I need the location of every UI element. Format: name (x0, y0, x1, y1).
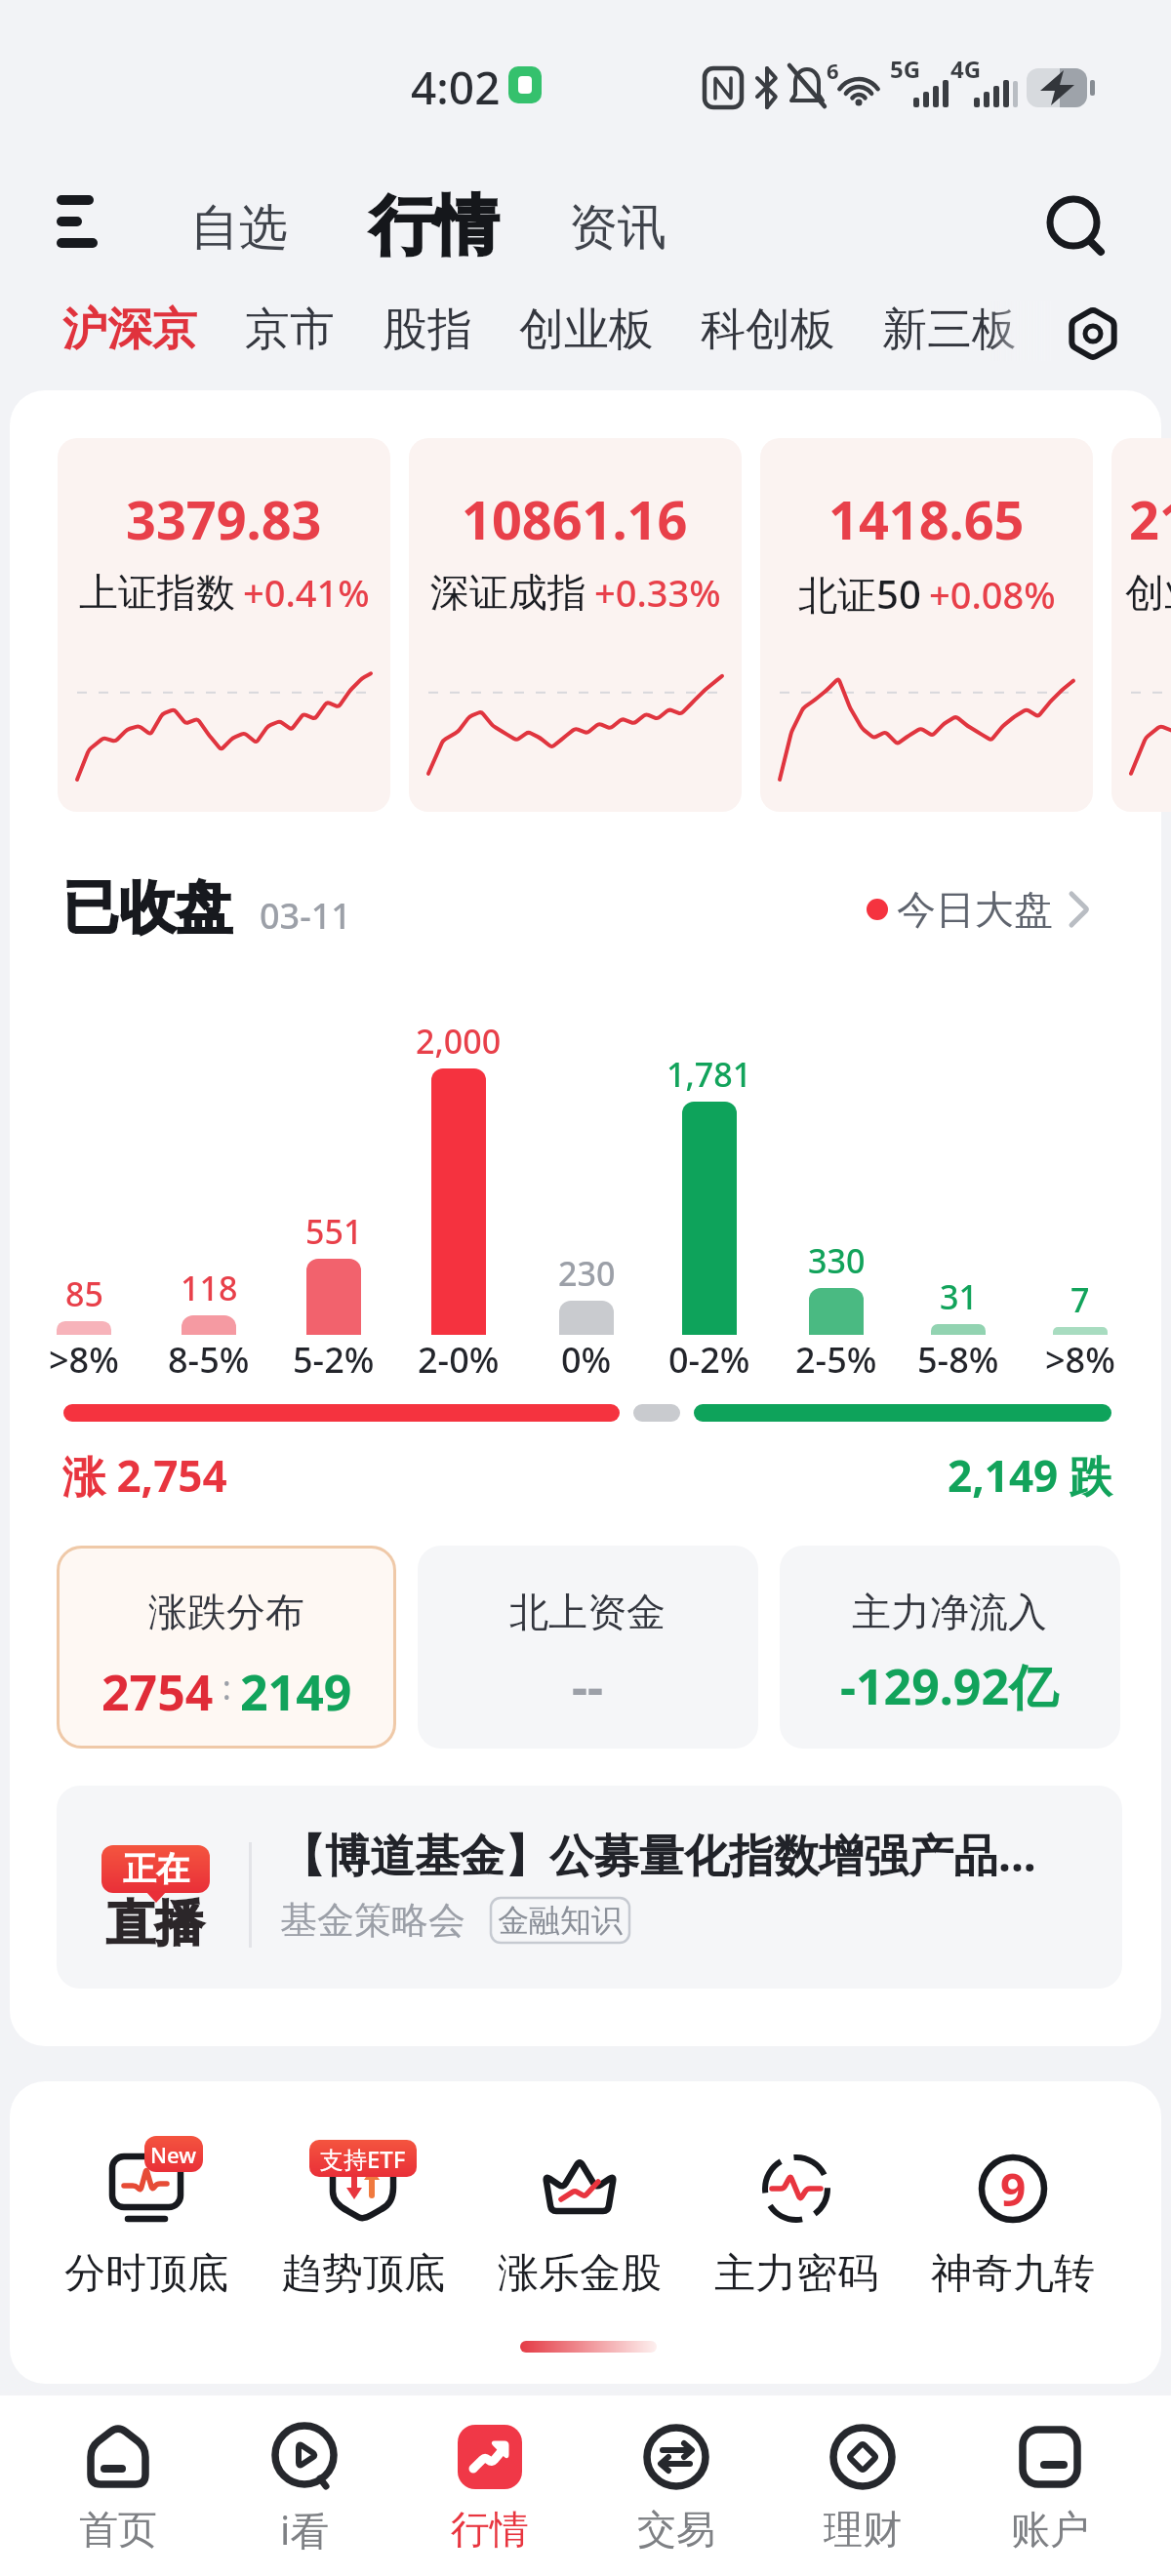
staticText: 创业板 (519, 302, 654, 358)
button[interactable]: 自选 (176, 190, 303, 264)
staticText: 2-0% (418, 1336, 500, 1384)
staticText: -129.92亿 (840, 1653, 1059, 1719)
staticText: 3379.83 (126, 483, 322, 555)
button[interactable] (972, 2400, 1128, 2571)
button[interactable] (57, 1786, 1122, 1989)
staticText: 230 (558, 1251, 616, 1296)
button[interactable] (226, 2400, 383, 2571)
button[interactable] (275, 2115, 451, 2311)
staticText: 1418.65 (828, 483, 1025, 555)
button[interactable] (492, 2115, 667, 2311)
staticText: 5-2% (293, 1336, 375, 1384)
staticText: 主力净流入 (852, 1588, 1047, 1636)
staticText: 科创板 (701, 302, 835, 358)
staticText: 趋势顶底 (281, 2248, 445, 2300)
staticText: 1,781 (666, 1052, 752, 1097)
staticText: 涨乐金股 (498, 2248, 662, 2300)
staticText: 神奇九转 (931, 2248, 1095, 2300)
staticText: 交易 (637, 2505, 715, 2554)
staticText: 03-11 (260, 892, 351, 940)
button[interactable] (40, 2400, 196, 2571)
button[interactable]: 资讯 (554, 190, 681, 264)
staticText: 85 (65, 1271, 103, 1316)
staticText: +0.33% (594, 567, 721, 618)
button[interactable]: 新三板 (867, 285, 1032, 375)
staticText: 深证成指 (430, 568, 586, 617)
staticText: +0.41% (243, 567, 370, 618)
button[interactable] (418, 1546, 758, 1749)
staticText: 330 (808, 1238, 866, 1283)
button[interactable]: 京市 (226, 285, 353, 375)
staticText: 北证50 (798, 567, 921, 621)
staticText: 已收盘 (62, 872, 232, 944)
button[interactable] (1042, 193, 1110, 262)
button[interactable]: 科创板 (685, 285, 851, 375)
staticText: 资讯 (569, 197, 666, 259)
staticText: 股指 (383, 302, 472, 358)
staticText: >8% (49, 1336, 119, 1384)
button[interactable] (59, 2115, 234, 2311)
staticText: 2-5% (795, 1336, 877, 1384)
button[interactable] (1064, 304, 1122, 363)
staticText: 涨跌分布 (148, 1588, 304, 1636)
button[interactable] (57, 1546, 396, 1749)
staticText: 2754 (101, 1659, 214, 1715)
staticText: 118 (181, 1266, 238, 1310)
button[interactable]: 10861.16 (409, 438, 742, 812)
staticText: : (214, 1665, 240, 1710)
staticText: 账户 (1011, 2505, 1089, 2554)
button[interactable] (849, 868, 1103, 946)
staticText: 京市 (245, 302, 335, 358)
button[interactable]: 股指 (364, 285, 491, 375)
staticText: 北上资金 (509, 1588, 666, 1636)
staticText: 0-2% (668, 1336, 750, 1384)
staticText: 2180.42 (1129, 483, 1171, 555)
staticText: 8-5% (168, 1336, 250, 1384)
staticText: 正在 (123, 1848, 189, 1890)
staticText: 上证指数 (79, 568, 235, 617)
button[interactable] (598, 2400, 754, 2571)
staticText: 5G (890, 53, 921, 85)
button[interactable]: 行情 (343, 183, 525, 267)
button[interactable] (785, 2400, 941, 2571)
staticText: 首页 (79, 2505, 157, 2554)
button[interactable]: 沪深京 (47, 285, 213, 375)
staticText: 支持ETF (320, 2143, 406, 2175)
staticText: 主力密码 (714, 2248, 878, 2300)
staticText: 5-8% (917, 1336, 999, 1384)
button[interactable] (925, 2115, 1101, 2311)
staticText: -- (572, 1653, 603, 1719)
staticText: New (150, 2140, 197, 2169)
staticText: 基金策略会 (280, 1897, 465, 1944)
staticText: 551 (305, 1209, 363, 1254)
staticText: 6 (827, 56, 839, 85)
staticText: 沪深京 (62, 302, 197, 358)
button[interactable]: 1418.65 (760, 438, 1093, 812)
staticText: +0.08% (929, 569, 1056, 620)
staticText: 金融知识 (498, 1901, 623, 1940)
staticText: 理财 (824, 2505, 902, 2554)
staticText: 行情 (370, 185, 499, 266)
button[interactable] (412, 2400, 568, 2571)
staticText: 自选 (190, 197, 288, 259)
staticText: 今日大盘 (897, 885, 1053, 934)
staticText: 直播 (106, 1893, 204, 1954)
staticText: 31 (940, 1274, 978, 1319)
staticText: 创业板指 (1125, 568, 1171, 617)
staticText: 4:02 (411, 57, 501, 118)
button[interactable]: 3379.83 (58, 438, 390, 812)
button[interactable]: 2180.42 (1111, 438, 1171, 812)
staticText: 0% (561, 1336, 612, 1384)
staticText: 涨 2,754 (62, 1446, 227, 1505)
staticText: 9 (1000, 2158, 1027, 2220)
button[interactable] (57, 193, 103, 256)
button[interactable] (780, 1546, 1120, 1749)
button[interactable]: 创业板 (504, 285, 669, 375)
staticText: 新三板 (882, 302, 1017, 358)
button[interactable] (708, 2115, 884, 2311)
staticText: 【博道基金】公募量化指数增强产品... (280, 1824, 1036, 1885)
staticText: 10861.16 (462, 483, 688, 555)
staticText: 2,000 (416, 1019, 502, 1064)
staticText: 4G (950, 53, 982, 85)
staticText: 2149 (240, 1659, 352, 1715)
